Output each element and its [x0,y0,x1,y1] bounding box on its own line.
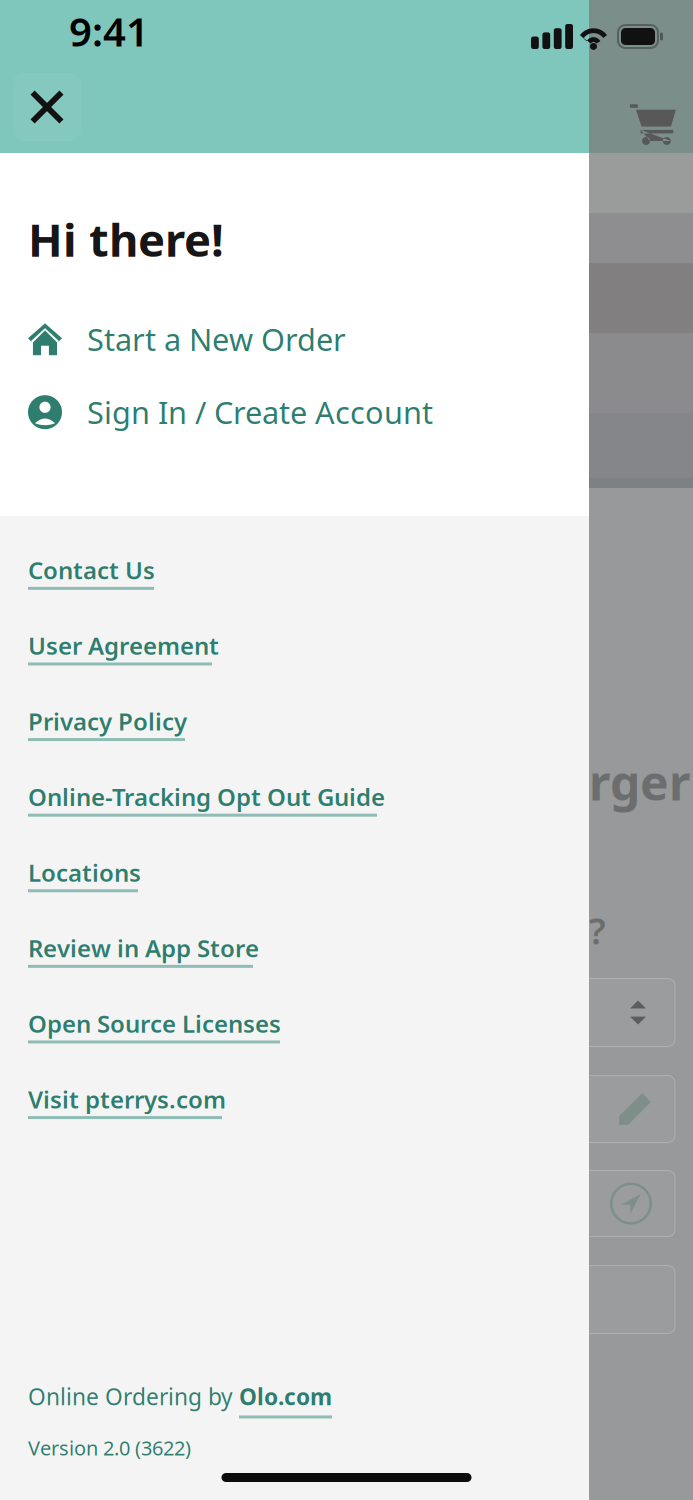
staticText: Review in App Store [28,932,259,964]
button[interactable]: Review in App Store [28,932,575,982]
button[interactable]: Olo.com [239,1381,332,1418]
staticText: Locations [28,856,141,888]
button[interactable]: Privacy Policy [28,705,575,755]
staticText: Online-Tracking Opt Out Guide [28,781,385,813]
staticText: rger [589,750,690,814]
staticText: Sign In / Create Account [87,392,433,432]
staticText: Visit pterrys.com [28,1083,226,1115]
button[interactable]: Start a New Order [28,315,575,363]
button[interactable]: Cart [630,103,693,153]
staticText: Olo.com [239,1381,332,1411]
button[interactable]: Contact Us [28,554,575,604]
button[interactable]: Open Source Licenses [28,1008,575,1058]
staticText: Privacy Policy [28,705,187,737]
staticText: User Agreement [28,630,219,661]
button[interactable]: Sign In / Create Account [28,388,575,436]
staticText: Open Source Licenses [28,1008,281,1039]
staticText: Start a New Order [87,319,346,359]
staticText: Contact Us [28,554,155,586]
staticText: Online Ordering by [28,1381,239,1411]
button[interactable]: User Agreement [28,630,575,680]
staticText: Hi there! [28,209,224,269]
staticText: Version 2.0 (3622) [28,1434,191,1461]
button[interactable]: Visit pterrys.com [28,1083,575,1133]
button[interactable]: Online-Tracking Opt Out Guide [28,781,575,831]
button[interactable]: Locations [28,856,575,906]
button[interactable]: Close menu [13,73,81,141]
staticText: ? [589,907,606,954]
staticText: 9:41 [69,4,149,57]
